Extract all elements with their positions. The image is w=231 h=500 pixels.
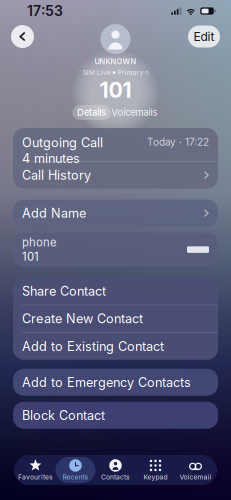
staticText: Outgoing Call [22,135,103,150]
staticText: Details [77,107,106,118]
staticText: Share Contact [22,283,106,299]
staticText: 17:53 [27,2,63,19]
staticText: Add to Existing Contact [22,339,164,354]
staticText: SIM Live [83,69,111,77]
staticText: Add to Emergency Contacts [22,375,191,390]
button[interactable]: Add to Existing Contact [13,333,218,360]
button[interactable]: Recents [55,457,95,483]
staticText: Today · 17:22 [147,136,209,148]
staticText: Keypad [143,473,167,481]
button[interactable]: Voicemail [175,457,215,483]
staticText: Contacts [101,473,130,481]
button[interactable]: Share Contact [13,278,218,305]
staticText: Favourites [18,473,53,481]
button[interactable]: Keypad [135,457,175,483]
button[interactable]: Add Name [13,200,218,227]
button[interactable]: Call History [13,162,218,189]
staticText: 101 [99,77,131,103]
staticText: 4 minutes [22,151,80,166]
button[interactable]: Contacts [95,457,135,483]
button[interactable]: phone [13,233,218,267]
staticText: Voicemail [179,473,211,481]
button[interactable]: Favourites [15,457,55,483]
staticText: phone [22,236,57,249]
button[interactable]: Edit [188,25,220,47]
staticText: Block Contact [22,408,105,423]
button[interactable]: Add to Emergency Contacts [13,369,218,396]
staticText: Recents [62,473,88,481]
staticText: UNKNOWN [94,57,136,66]
button[interactable]: Outgoing Call [13,128,218,161]
staticText: Voicemails [111,107,157,118]
button[interactable]: Back [11,25,34,48]
staticText: 101 [22,250,39,263]
staticText: Primary [117,69,143,77]
staticText: Edit [193,29,214,44]
button[interactable]: Create New Contact [13,305,218,332]
staticText: Call History [22,167,91,183]
button[interactable]: Details [72,105,110,120]
button[interactable]: Block Contact [13,402,218,429]
button[interactable]: Voicemails [110,105,158,120]
staticText: Create New Contact [22,311,143,326]
staticText: Add Name [22,205,86,221]
